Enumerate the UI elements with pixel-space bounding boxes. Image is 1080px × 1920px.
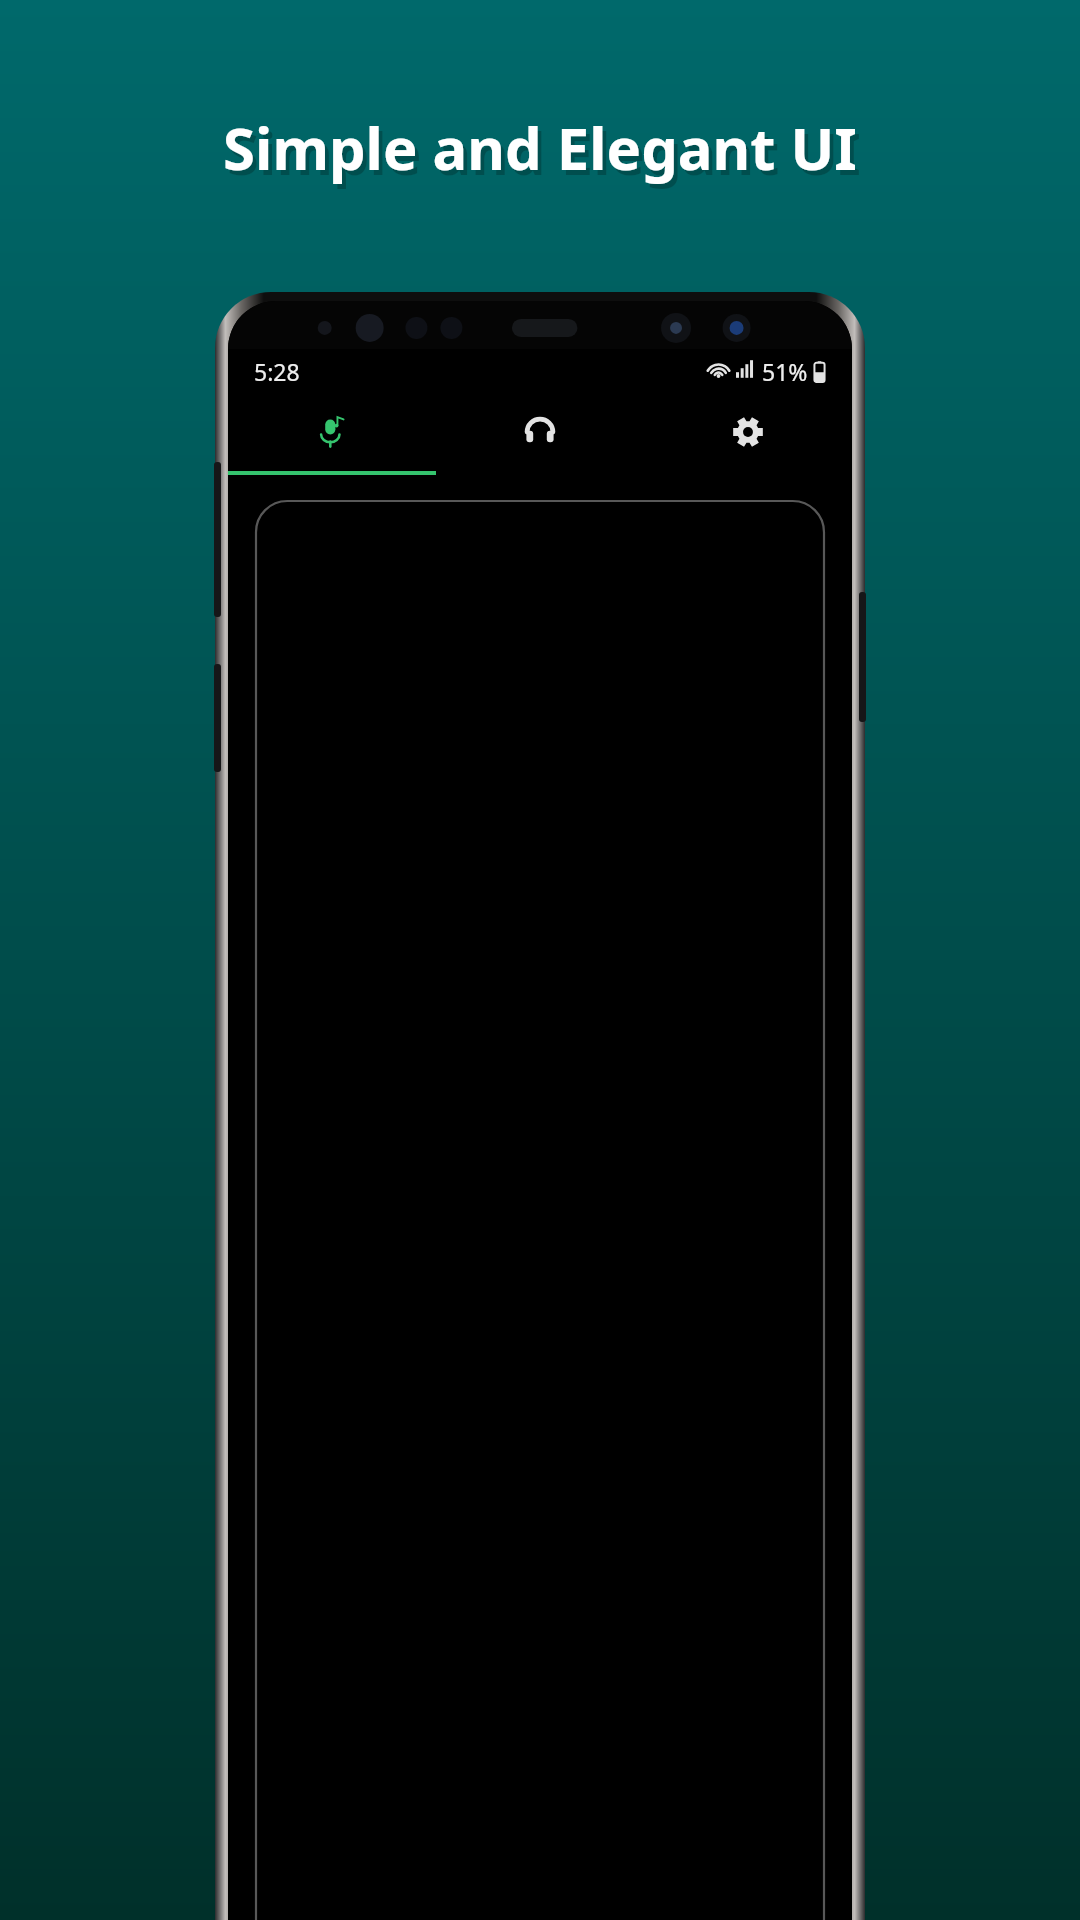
- staticText: 5:28: [254, 356, 300, 387]
- button[interactable]: Record tab: [228, 393, 436, 471]
- button[interactable]: Playback tab: [436, 393, 644, 471]
- staticText: Simple and Elegant UI: [227, 113, 861, 192]
- staticText: 51%: [762, 356, 808, 387]
- button[interactable]: Settings tab: [644, 393, 852, 471]
- staticText: Simple and Elegant UI: [223, 108, 857, 187]
